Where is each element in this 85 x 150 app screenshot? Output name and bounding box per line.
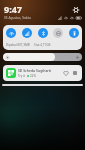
staticText: 9:47 [4,3,22,15]
button[interactable]: Bluetooth [38,28,48,38]
staticText: Dipakai 807,3MB [6,43,30,47]
button[interactable]: Wi-Fi [6,28,16,38]
staticText: SD Schedu Sugiharti [18,68,52,73]
button[interactable]: Settings [72,6,80,14]
button[interactable]: Do not disturb [53,28,63,38]
button[interactable]: Mobile data [22,28,32,38]
button[interactable] [3,53,82,61]
button[interactable]: SD Schedu Sugiharti [3,65,82,81]
staticText: Try it [18,74,25,78]
button[interactable]: Flashlight [69,28,79,38]
staticText: 05 Agustus, Sabtu [4,16,31,20]
staticText: Sisa 4,71GB [34,43,51,47]
button[interactable]: Favorite [62,69,70,77]
staticText: 22% [30,74,36,78]
button[interactable]: Dismiss [71,69,79,77]
